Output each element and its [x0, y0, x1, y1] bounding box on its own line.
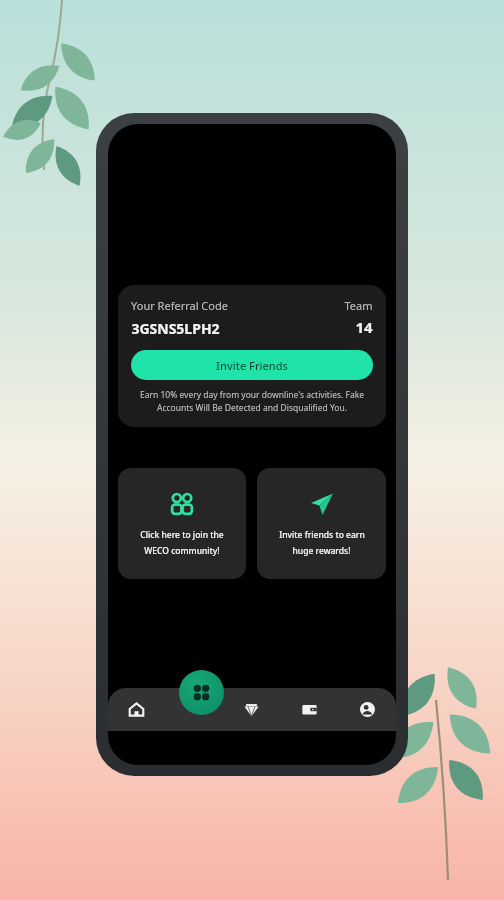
staticText: Earn 10% every day from your downline's … [131, 389, 373, 414]
button[interactable]: Invite Friends [131, 350, 373, 380]
button[interactable]: Invite friends [257, 468, 386, 579]
button[interactable]: Team [179, 670, 224, 715]
button[interactable]: Rewards [222, 688, 280, 731]
button[interactable]: Home [108, 688, 165, 731]
staticText: 14 [355, 317, 373, 337]
button[interactable]: Wallet [280, 688, 338, 731]
staticText: Invite Friends [216, 358, 288, 373]
staticText: Invite friends to earn [279, 529, 365, 541]
staticText: huge rewards! [292, 545, 351, 557]
button[interactable]: Team [165, 688, 222, 731]
staticText: Click here to join the [140, 529, 224, 541]
staticText: WECO community! [144, 545, 220, 557]
staticText: 3GSNS5LPH2 [131, 319, 220, 338]
staticText: Your Referral Code [131, 298, 228, 313]
staticText: Team [344, 298, 373, 313]
button[interactable]: Profile [338, 688, 396, 731]
button[interactable]: Join WECO community [118, 468, 246, 579]
